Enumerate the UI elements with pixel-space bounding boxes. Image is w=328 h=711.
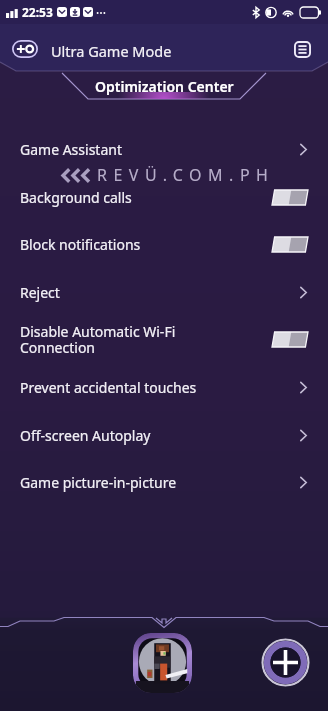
staticText: Block notifications <box>20 235 272 254</box>
button[interactable]: Background calls switch <box>272 190 308 205</box>
button[interactable]: Game mode <box>9 38 40 60</box>
button[interactable]: Disable Automatic Wi-Fi Connection switc… <box>272 332 308 347</box>
staticText: Prevent accidental touches <box>20 378 299 397</box>
button[interactable]: Game <box>133 633 192 693</box>
button[interactable]: Reject <box>0 268 328 316</box>
staticText: Optimization Center <box>95 77 234 96</box>
button[interactable]: Optimization Center tab <box>0 70 328 104</box>
button[interactable]: Off-screen Autoplay <box>0 411 328 459</box>
staticText: REVÜ.COM.PH <box>97 164 275 186</box>
staticText: Reject <box>20 283 299 302</box>
button[interactable]: Block notifications switch <box>272 237 308 252</box>
staticText: Game Assistant <box>20 140 299 159</box>
staticText: Background calls <box>20 188 272 207</box>
button[interactable]: Background calls <box>0 173 328 221</box>
button[interactable]: Game picture-in-picture <box>0 458 328 506</box>
button[interactable]: Prevent accidental touches <box>0 363 328 411</box>
button[interactable]: Block notifications <box>0 220 328 268</box>
staticText: 22:53 <box>22 4 53 20</box>
staticText: Ultra Game Mode <box>51 41 172 61</box>
button[interactable]: Menu <box>291 38 314 61</box>
button[interactable]: Add game <box>261 638 310 687</box>
staticText: Off-screen Autoplay <box>20 426 299 445</box>
staticText: Disable Automatic Wi-Fi Connection <box>20 322 272 357</box>
button[interactable]: Disable Automatic Wi-Fi Connection <box>0 315 328 363</box>
staticText: Game picture-in-picture <box>20 473 299 492</box>
button[interactable]: Game Assistant <box>0 125 328 173</box>
